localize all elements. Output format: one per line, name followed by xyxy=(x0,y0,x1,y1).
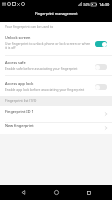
button[interactable] xyxy=(0,55,112,75)
staticText: Fingerprint list (1/5) xyxy=(5,98,37,103)
button[interactable]: Switch on xyxy=(95,41,107,47)
staticText: it is off xyxy=(5,45,16,49)
staticText: Your fingerprint can be used to xyxy=(5,24,54,28)
staticText: Access app lock xyxy=(5,81,34,86)
button[interactable] xyxy=(0,106,112,122)
staticText: Fingerprint ID 1 xyxy=(5,109,34,114)
button[interactable]: Recent apps xyxy=(79,185,99,200)
staticText: Access safe xyxy=(5,60,26,65)
staticText: 34% xyxy=(83,2,90,7)
other: Open xyxy=(104,112,108,116)
button[interactable]: Switch off xyxy=(95,84,107,90)
staticText: 14:30 xyxy=(99,2,110,7)
staticText: Use fingerprint to unlock phone or lock … xyxy=(5,41,91,45)
button[interactable] xyxy=(0,75,112,96)
staticText: Enable safe before associating your fing… xyxy=(5,66,78,70)
staticText: New fingerprint xyxy=(5,123,34,128)
button[interactable]: Back xyxy=(13,185,33,200)
staticText: Unlock screen xyxy=(5,35,31,40)
staticText: Enable app lock before associating your … xyxy=(5,87,85,91)
button[interactable]: Home xyxy=(46,185,66,200)
staticText: Fingerprint management xyxy=(35,11,78,16)
other: Open xyxy=(104,126,108,130)
button[interactable]: Switch off xyxy=(95,64,107,70)
button[interactable] xyxy=(0,31,112,55)
button[interactable] xyxy=(0,122,112,134)
